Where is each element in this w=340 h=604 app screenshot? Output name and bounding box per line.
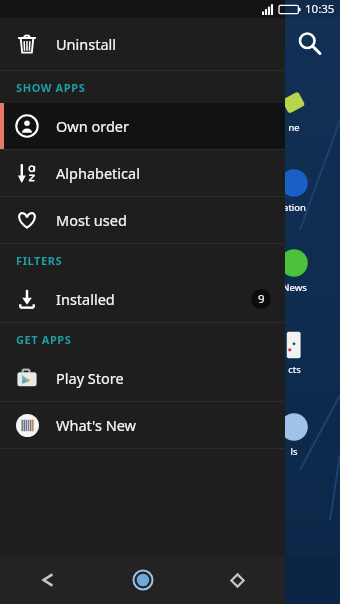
staticText: Own order: [56, 116, 130, 136]
staticText: Uninstall: [56, 34, 117, 54]
button[interactable]: Own order: [0, 103, 285, 149]
staticText: SHOW APPS: [16, 80, 86, 95]
button[interactable]: Home: [95, 556, 190, 604]
staticText: Most used: [56, 210, 127, 230]
staticText: Alphabetical: [56, 163, 140, 183]
button[interactable]: Alphabetical: [0, 150, 285, 196]
staticText: News: [282, 281, 307, 294]
button[interactable]: Back: [0, 556, 95, 604]
staticText: ation: [283, 201, 306, 214]
staticText: GET APPS: [16, 332, 72, 347]
staticText: cts: [288, 363, 301, 376]
button[interactable]: Installed: [0, 276, 285, 322]
button[interactable]: Play Store: [0, 355, 285, 401]
button[interactable]: Most used: [0, 197, 285, 243]
staticText: What's New: [56, 415, 136, 435]
staticText: 9: [258, 291, 265, 307]
button[interactable]: Uninstall: [0, 18, 285, 70]
button[interactable]: What's New: [0, 402, 285, 448]
button[interactable]: Search: [292, 26, 326, 60]
staticText: 10:35: [305, 1, 335, 17]
button[interactable]: Recents: [190, 556, 285, 604]
staticText: Play Store: [56, 368, 124, 388]
staticText: Installed: [56, 289, 115, 309]
staticText: ls: [290, 445, 298, 458]
staticText: FILTERS: [16, 253, 63, 268]
staticText: ne: [288, 121, 300, 134]
